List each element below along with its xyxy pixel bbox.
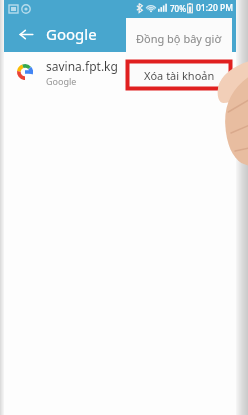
staticText: Google [46,24,97,44]
staticText: 70% [170,3,186,14]
staticText: 01:20 PM [196,2,233,14]
staticText: Google [46,75,77,87]
button[interactable]: Back [12,20,40,48]
staticText: savina.fpt.kg [46,58,118,74]
button[interactable]: Đồng bộ bây giờ [126,18,232,58]
button[interactable]: savina.fpt.kg [4,52,236,92]
staticText: Xóa tài khoản [144,68,215,83]
staticText: Đồng bộ bây giờ [136,31,222,46]
button[interactable]: Xóa tài khoản [126,60,232,90]
